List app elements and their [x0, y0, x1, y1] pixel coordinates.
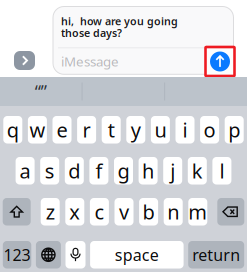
staticText: w: [29, 116, 45, 143]
staticText: a: [20, 157, 31, 184]
staticText: t: [108, 116, 115, 143]
button[interactable]: m: [188, 198, 207, 225]
button[interactable]: i: [175, 116, 194, 143]
staticText: o: [204, 116, 216, 143]
staticText: e: [56, 116, 67, 143]
staticText: s: [45, 157, 55, 184]
button[interactable]: v: [114, 198, 133, 225]
staticText: b: [143, 198, 155, 225]
staticText: iMessage: [61, 52, 119, 70]
staticText: d: [68, 157, 80, 184]
button[interactable]: Delete: [217, 198, 244, 225]
staticText: g: [117, 157, 129, 184]
button[interactable]: “”: [0, 77, 82, 106]
staticText: z: [46, 198, 55, 225]
staticText: l: [219, 157, 224, 184]
staticText: p: [228, 116, 240, 143]
button[interactable]: k: [188, 157, 207, 184]
button[interactable]: Send: [205, 47, 234, 76]
staticText: return: [192, 244, 240, 265]
button[interactable]: a: [16, 157, 35, 184]
staticText: q: [7, 116, 19, 143]
staticText: y: [131, 116, 141, 143]
staticText: space: [115, 244, 159, 265]
button[interactable]: Dictate: [65, 241, 85, 268]
staticText: n: [167, 198, 179, 225]
staticText: c: [94, 198, 104, 225]
staticText: r: [83, 116, 91, 143]
staticText: 123: [3, 244, 30, 265]
staticText: those days?: [61, 26, 122, 40]
button[interactable]: r: [77, 116, 96, 143]
button[interactable]: l: [212, 157, 231, 184]
button[interactable]: c: [90, 198, 109, 225]
button[interactable]: d: [65, 157, 84, 184]
button[interactable]: f: [89, 157, 108, 184]
button[interactable]: q: [3, 116, 22, 143]
button[interactable]: t: [102, 116, 121, 143]
button[interactable]: j: [163, 157, 182, 184]
button[interactable]: Next keyboard: [36, 241, 61, 268]
staticText: h: [142, 157, 154, 184]
staticText: f: [95, 157, 102, 184]
button[interactable]: w: [28, 116, 47, 143]
button[interactable]: z: [41, 198, 60, 225]
button[interactable]: o: [200, 116, 219, 143]
staticText: v: [119, 198, 129, 225]
button[interactable]: h: [139, 157, 158, 184]
button[interactable]: x: [65, 198, 84, 225]
button[interactable]: p: [225, 116, 244, 143]
staticText: x: [69, 198, 80, 225]
button[interactable]: g: [114, 157, 133, 184]
button[interactable]: n: [164, 198, 183, 225]
button[interactable]: 123: [3, 241, 31, 268]
button[interactable]: Shift: [3, 198, 31, 225]
button[interactable]: return: [188, 241, 244, 268]
button[interactable]: space: [90, 241, 184, 268]
button[interactable]: s: [40, 157, 59, 184]
button[interactable]: b: [139, 198, 158, 225]
button[interactable]: y: [126, 116, 145, 143]
staticText: k: [192, 157, 203, 184]
staticText: u: [154, 116, 166, 143]
staticText: j: [170, 157, 175, 184]
button[interactable]: u: [151, 116, 170, 143]
staticText: “”: [35, 80, 47, 103]
staticText: i: [182, 116, 187, 143]
staticText: m: [188, 198, 207, 225]
button[interactable]: e: [52, 116, 71, 143]
staticText: hi, how are you going: [61, 14, 178, 28]
button[interactable]: Apps: [14, 51, 35, 70]
